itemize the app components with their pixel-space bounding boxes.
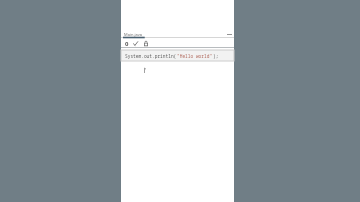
button[interactable]: Main.java — [123, 32, 143, 37]
staticText: ); — [213, 53, 219, 59]
staticText: System.out.println( — [125, 53, 177, 59]
staticText: Main.java — [124, 32, 142, 37]
button[interactable]: Lock — [142, 40, 149, 47]
button[interactable]: Minimize — [225, 30, 233, 38]
button[interactable]: Run — [123, 40, 130, 47]
staticText: 0 — [125, 40, 129, 47]
button[interactable]: Validate — [132, 40, 139, 47]
staticText: "Hello world" — [177, 53, 213, 59]
button[interactable]: System.out.println( — [121, 50, 234, 61]
